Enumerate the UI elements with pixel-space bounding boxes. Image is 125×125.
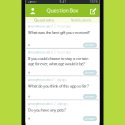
staticText: What was the best gift you received? (28, 30, 90, 35)
button[interactable]: Ask a question (87, 4, 97, 17)
button[interactable]: Questions (25, 17, 62, 23)
staticText: Anonymous (28, 25, 45, 28)
staticText: Carrier (27, 0, 36, 4)
staticText: 100% (89, 0, 97, 4)
button[interactable]: Anonymous (25, 23, 99, 49)
staticText: Question Box (46, 7, 78, 14)
staticText: Questions (34, 17, 54, 23)
staticText: 9:41 (59, 0, 66, 4)
button[interactable]: Notifications (62, 17, 99, 23)
staticText: Do you have any pets? (28, 107, 66, 113)
staticText: Answer (85, 43, 95, 47)
staticText: Anonymous (28, 102, 45, 106)
staticText: Answer (85, 71, 95, 74)
button[interactable]: Anonymous (25, 76, 99, 100)
button[interactable]: Anonymous (25, 49, 99, 76)
staticText: asked 2 hours ago (46, 25, 71, 28)
staticText: asked 5 hours ago (46, 51, 71, 54)
staticText: What do you think of this app so far? (28, 83, 89, 89)
staticText: If you could choose to stay a certain ag… (28, 56, 88, 66)
staticText: asked 2 days ago (46, 102, 68, 106)
staticText: asked 1 day ago (46, 78, 67, 82)
staticText: Anonymous (28, 51, 45, 54)
staticText: Answer (85, 95, 95, 98)
button[interactable]: Anonymous (25, 100, 99, 122)
staticText: Answer (85, 117, 95, 120)
staticText: Notifications (70, 17, 91, 23)
staticText: Anonymous (28, 78, 45, 82)
button[interactable]: Profile (27, 4, 37, 17)
